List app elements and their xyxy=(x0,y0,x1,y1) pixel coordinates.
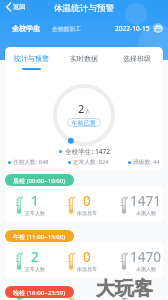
button[interactable]: 统计与预警 xyxy=(5,47,57,74)
staticText: 0 xyxy=(83,248,91,266)
staticText: 体温异常 xyxy=(77,266,97,272)
staticText: 体温统计与预警 xyxy=(54,3,115,14)
button[interactable]: 实时数据 xyxy=(57,47,110,74)
button[interactable]: 午检已测 xyxy=(67,118,101,127)
staticText: 统计与预警 xyxy=(14,54,49,63)
staticText: 1 xyxy=(31,192,39,210)
staticText: 选择班级 xyxy=(123,54,151,63)
staticText: 实时数据 xyxy=(70,54,98,63)
button[interactable]: 返回 xyxy=(4,1,28,13)
staticText: 人 xyxy=(85,108,91,115)
button[interactable]: 午检 (11:00~15:00) xyxy=(5,230,74,242)
staticText: 1471 xyxy=(130,192,161,210)
staticText: 未测人数 xyxy=(136,210,156,216)
button[interactable]: 选择班级 xyxy=(110,47,163,74)
button[interactable]: 全校教职工 xyxy=(52,25,81,32)
button[interactable]: 2022-10-15 xyxy=(115,23,163,33)
other: Pick date xyxy=(153,23,163,33)
staticText: 住校人数: 648 xyxy=(13,158,49,166)
staticText: 2 xyxy=(78,101,85,116)
button[interactable]: 晨检 (00:00~10:00) xyxy=(5,174,74,186)
staticText: 午检 (11:00~15:00) xyxy=(13,232,66,240)
staticText: 全校学生: 1472 xyxy=(65,147,110,156)
staticText: 0 xyxy=(83,192,91,210)
staticText: 2022-10-15 xyxy=(115,24,150,33)
staticText: 正常人数: 824 xyxy=(73,158,109,166)
staticText: 大玩客 xyxy=(96,277,153,300)
staticText: 晚检 (16:00~23:59) xyxy=(13,288,66,296)
staticText: 正常人数 xyxy=(25,266,45,272)
button[interactable]: 晚检 (16:00~23:59) xyxy=(5,286,74,298)
button[interactable]: 全校学生 xyxy=(12,24,40,33)
staticText: 2 xyxy=(31,248,39,266)
staticText: 未测人数 xyxy=(136,266,156,272)
staticText: 返回 xyxy=(13,3,26,11)
staticText: 晨检 (00:00~10:00) xyxy=(13,176,66,184)
staticText: 正常人数 xyxy=(25,210,45,216)
staticText: 体温异常 xyxy=(77,210,97,216)
staticText: 午检已测 xyxy=(72,119,96,126)
staticText: 1470 xyxy=(130,248,161,266)
staticText: 班级数: 44 xyxy=(133,158,160,166)
